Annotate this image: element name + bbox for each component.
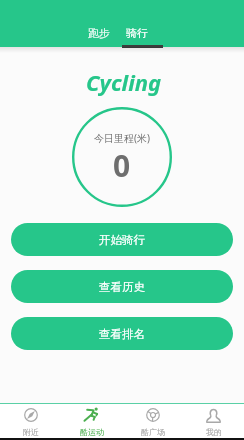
staticText: 查看历史 xyxy=(99,280,145,294)
button[interactable]: Square xyxy=(122,404,183,438)
staticText: 0 xyxy=(113,145,131,186)
staticText: 酷广场 xyxy=(141,427,165,437)
staticText: 酷运动 xyxy=(80,427,104,437)
button[interactable]: 查看历史 xyxy=(11,270,233,303)
staticText: 骑行 xyxy=(126,26,148,40)
button[interactable]: Me xyxy=(183,404,244,438)
button[interactable]: 骑行 xyxy=(118,0,156,47)
button[interactable]: Nearby xyxy=(0,404,61,438)
staticText: 今日里程(米) xyxy=(94,131,150,145)
staticText: Cycling xyxy=(86,67,162,97)
staticText: 附近 xyxy=(23,427,39,437)
staticText: 查看排名 xyxy=(99,327,145,341)
button[interactable]: 查看排名 xyxy=(11,317,233,350)
staticText: 跑步 xyxy=(88,26,110,40)
button[interactable]: 开始骑行 xyxy=(11,223,233,256)
staticText: 我的 xyxy=(206,427,222,437)
button[interactable]: 跑步 xyxy=(80,0,118,47)
staticText: 开始骑行 xyxy=(99,233,145,247)
button[interactable]: Sports xyxy=(61,404,122,438)
